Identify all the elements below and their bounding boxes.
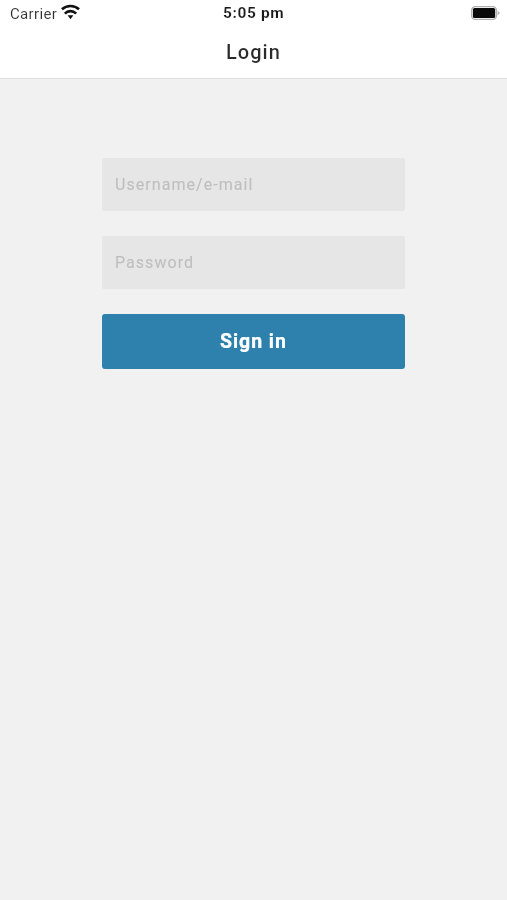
button[interactable]: Username/e-mail <box>102 158 405 211</box>
staticText: Username/e-mail <box>115 175 254 194</box>
staticText: 5:05 pm <box>223 4 285 22</box>
button[interactable]: Password <box>102 236 405 289</box>
other: Battery full <box>471 6 500 20</box>
staticText: Carrier <box>10 5 58 23</box>
button[interactable]: Sign in <box>102 314 405 369</box>
staticText: Password <box>115 253 195 272</box>
staticText: Sign in <box>220 330 287 353</box>
other: Wi-Fi signal <box>61 5 80 19</box>
staticText: Login <box>226 40 281 63</box>
